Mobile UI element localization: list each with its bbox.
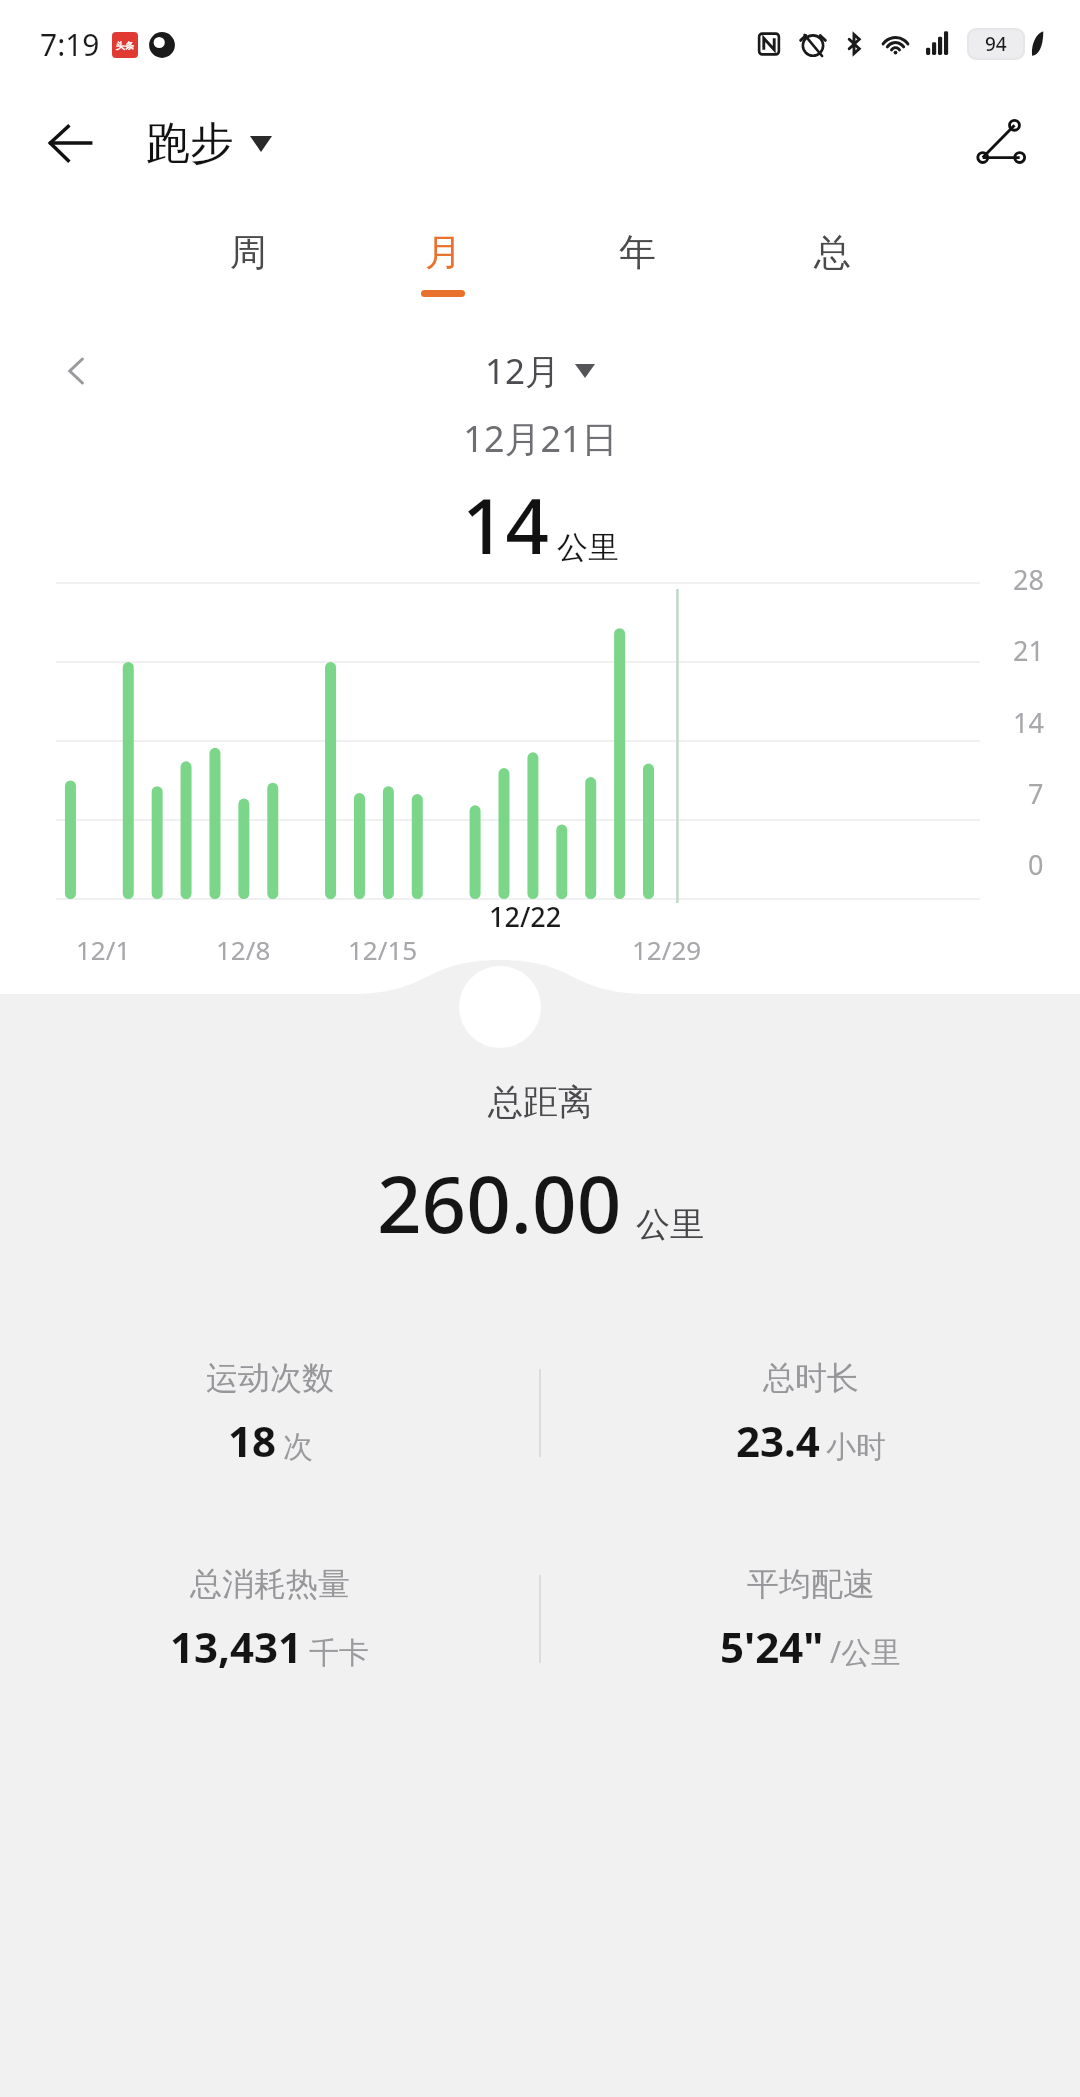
staticText: 12/29 [632,932,702,967]
button[interactable]: Previous month [48,342,106,400]
staticText: 公里 [636,1203,704,1246]
staticText: 公里 [557,528,619,567]
staticText: 7:19 [40,24,100,65]
staticText: 总距离 [488,1080,593,1124]
staticText: 次 [283,1428,313,1466]
staticText: /公里 [830,1631,902,1672]
button[interactable]: 周 [205,229,291,297]
staticText: 13,431 [170,1618,303,1675]
button[interactable]: 总 [789,229,875,297]
button[interactable]: 年 [594,229,680,297]
staticText: 12月 [485,347,561,395]
staticText: 260.00 [377,1150,622,1256]
staticText: 14 [1013,704,1044,741]
staticText: 年 [619,229,656,276]
staticText: 小时 [826,1428,886,1466]
button[interactable]: 总时长 [541,1338,1080,1488]
button[interactable]: 总消耗热量 [0,1544,539,1694]
button[interactable]: 跑步 [146,116,272,171]
button[interactable]: 12月 [485,347,595,395]
button[interactable]: 运动次数 [0,1338,539,1488]
staticText: 94 [985,31,1007,57]
staticText: 运动次数 [206,1358,334,1398]
staticText: 0 [1028,846,1044,883]
staticText: 28 [1013,561,1044,598]
staticText: 周 [230,229,267,276]
button[interactable]: Share [964,105,1040,181]
staticText: 12/8 [216,932,271,967]
staticText: 跑步 [146,116,234,171]
staticText: 5'24" [720,1618,824,1675]
staticText: 12/22 [489,898,562,935]
staticText: 头条 [116,40,134,51]
staticText: 总 [814,229,851,276]
staticText: 12月21日 [463,414,618,463]
staticText: 12/1 [76,932,131,967]
staticText: 月 [425,229,462,276]
staticText: 总消耗热量 [190,1564,350,1604]
staticText: 21 [1013,632,1044,669]
button[interactable]: Back [34,107,106,179]
staticText: 14 [462,473,549,577]
staticText: 总时长 [763,1358,859,1398]
staticText: 7 [1028,775,1044,812]
staticText: 12/15 [348,932,418,967]
button[interactable]: 平均配速 [541,1544,1080,1694]
button[interactable]: 月 [400,229,486,297]
staticText: 平均配速 [747,1564,875,1604]
staticText: 千卡 [309,1634,369,1672]
staticText: 23.4 [736,1412,820,1469]
staticText: 18 [228,1412,277,1469]
